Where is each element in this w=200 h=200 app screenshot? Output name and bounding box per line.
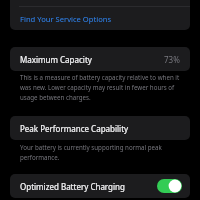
button[interactable]: Optimized Battery Charging, on	[157, 179, 182, 193]
staticText: Peak Performance Capability	[20, 123, 129, 134]
button[interactable]: Find Your Service Options	[10, 7, 190, 30]
staticText: Your battery is currently supporting nor…	[20, 143, 181, 162]
staticText: This is a measure of battery capacity re…	[20, 73, 181, 102]
staticText: Optimized Battery Charging	[20, 181, 125, 192]
button[interactable]: Peak Performance Capability	[10, 116, 190, 140]
button[interactable]: Maximum Capacity	[10, 47, 190, 71]
staticText: Find Your Service Options	[20, 14, 112, 24]
staticText: Maximum Capacity	[20, 54, 92, 65]
staticText: 73%	[164, 54, 180, 65]
button[interactable]: Optimized Battery Charging	[10, 174, 190, 198]
